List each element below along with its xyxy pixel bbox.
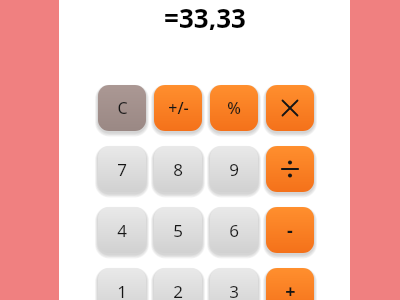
staticText: 5: [173, 219, 183, 242]
staticText: -: [287, 218, 293, 243]
staticText: 1: [117, 280, 127, 300]
button[interactable]: 6: [210, 207, 258, 253]
button[interactable]: 9: [210, 146, 258, 192]
staticText: C: [117, 97, 128, 119]
button[interactable]: Multiply: [266, 85, 314, 131]
button[interactable]: Clear: [98, 85, 146, 131]
button[interactable]: 5: [154, 207, 202, 253]
button[interactable]: Percent: [210, 85, 258, 131]
button[interactable]: Divide: [266, 146, 314, 192]
button[interactable]: 4: [98, 207, 146, 253]
button[interactable]: 2: [154, 268, 202, 300]
button[interactable]: Plus: [266, 268, 314, 300]
staticText: 8: [173, 158, 183, 181]
staticText: 6: [229, 219, 239, 242]
staticText: %: [227, 97, 241, 119]
button[interactable]: Plus minus: [154, 85, 202, 131]
button[interactable]: 1: [98, 268, 146, 300]
staticText: 3: [229, 280, 239, 300]
button[interactable]: 7: [98, 146, 146, 192]
staticText: +: [285, 279, 296, 300]
staticText: 4: [117, 219, 127, 242]
staticText: 2: [173, 280, 183, 300]
staticText: +/-: [168, 97, 189, 119]
button[interactable]: 3: [210, 268, 258, 300]
staticText: =33,33: [164, 0, 246, 30]
button[interactable]: Minus: [266, 207, 314, 253]
staticText: 9: [229, 158, 239, 181]
staticText: 7: [117, 158, 127, 181]
button[interactable]: 8: [154, 146, 202, 192]
